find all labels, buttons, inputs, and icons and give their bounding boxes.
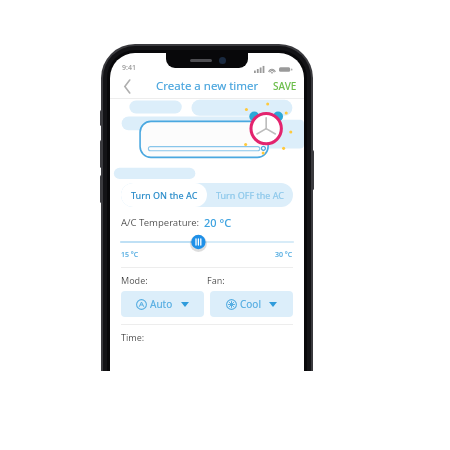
button[interactable] [121,234,293,250]
staticText: Fan: [207,274,293,286]
staticText: Mode: [121,274,207,286]
staticText: Auto [150,297,173,311]
staticText: Turn OFF the AC [216,189,284,201]
staticText: Turn ON the AC [131,189,198,201]
button[interactable]: Cool [210,291,293,317]
staticText: 30 °C [275,250,293,260]
staticText: Time: [121,331,145,343]
staticText: A/C Temperature: [121,216,200,229]
staticText: 15 °C [121,250,139,260]
button[interactable]: Turn OFF the AC [207,183,293,207]
button[interactable]: Turn ON the AC [121,183,207,207]
staticText: 9:41 [122,63,136,73]
staticText: 20 °C [204,215,232,230]
staticText: Cool [240,297,261,311]
button[interactable]: SAVE [273,79,297,93]
staticText: SAVE [273,79,297,93]
button[interactable]: Auto [121,291,204,317]
button[interactable]: Back [116,75,138,97]
staticText: Create a new timer [156,78,259,94]
